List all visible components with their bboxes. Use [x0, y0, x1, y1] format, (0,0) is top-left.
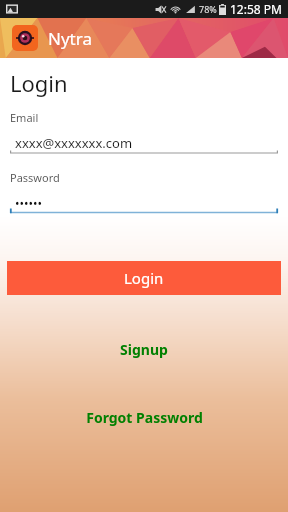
staticText: •••••• [15, 195, 43, 211]
staticText: Signup [120, 340, 168, 359]
button[interactable]: Forgot Password [0, 405, 288, 429]
staticText: 12:58 PM [230, 1, 282, 17]
staticText: 78% [199, 3, 217, 15]
staticText: Email [10, 110, 39, 125]
staticText: xxxx@xxxxxxx.com [15, 134, 133, 152]
button[interactable]: Login [7, 261, 281, 295]
staticText: Login [124, 268, 164, 288]
staticText: Nytra [48, 27, 92, 50]
staticText: Password [10, 170, 60, 185]
staticText: Forgot Password [86, 408, 203, 427]
button[interactable]: •••••• [10, 192, 278, 214]
other: Nytra app icon [12, 25, 38, 51]
staticText: Login [10, 68, 68, 98]
button[interactable]: Signup [0, 337, 288, 361]
button[interactable]: xxxx@xxxxxxx.com [10, 132, 278, 154]
